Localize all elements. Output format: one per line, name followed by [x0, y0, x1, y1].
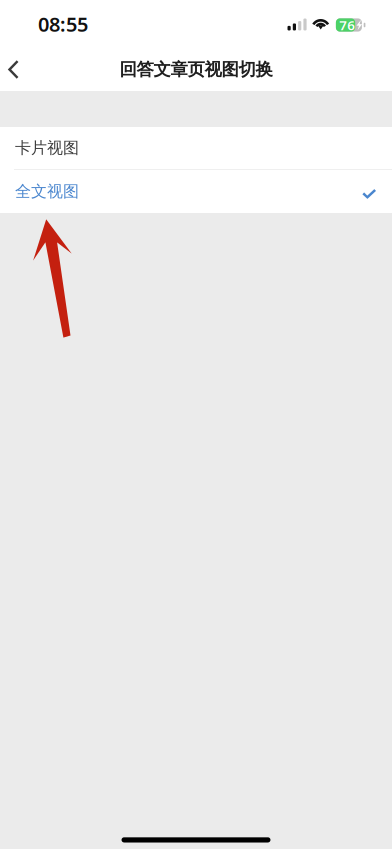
- button[interactable]: 全文视图: [0, 170, 392, 213]
- button[interactable]: 卡片视图: [0, 127, 392, 170]
- staticText: 76: [339, 16, 355, 34]
- staticText: 卡片视图: [15, 138, 79, 158]
- staticText: 全文视图: [15, 182, 79, 201]
- button[interactable]: Back: [0, 48, 26, 91]
- staticText: 08:55: [38, 11, 88, 37]
- staticText: 回答文章页视图切换: [119, 59, 272, 80]
